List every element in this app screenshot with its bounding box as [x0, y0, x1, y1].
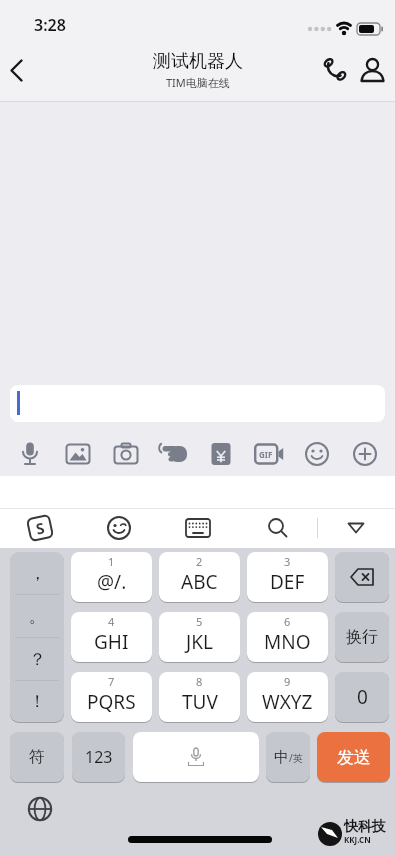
staticText: S	[34, 517, 47, 539]
button[interactable]: 6	[247, 612, 328, 663]
staticText: DEF	[270, 569, 305, 595]
staticText: 。	[29, 606, 46, 627]
staticText: /英	[289, 751, 303, 765]
staticText: GIF	[259, 449, 273, 460]
staticText: ABC	[181, 569, 218, 595]
staticText: TIM电脑在线	[166, 75, 230, 90]
button[interactable]: 4	[71, 612, 152, 663]
button[interactable]	[316, 52, 352, 88]
staticText: JKL	[186, 629, 213, 655]
button[interactable]	[111, 439, 141, 469]
button[interactable]	[10, 385, 385, 422]
button[interactable]	[335, 552, 389, 603]
button[interactable]	[133, 732, 259, 783]
button[interactable]	[101, 512, 137, 544]
button[interactable]: 中	[266, 732, 310, 783]
staticText: 符	[29, 747, 45, 767]
staticText: @/.	[97, 569, 127, 595]
staticText: 8	[196, 674, 203, 689]
staticText: 2	[196, 554, 203, 569]
button[interactable]: 3	[247, 552, 328, 603]
staticText: 中	[274, 748, 289, 767]
button[interactable]: 7	[71, 672, 152, 723]
staticText: ？	[29, 649, 46, 670]
staticText: 5	[196, 614, 203, 629]
button[interactable]	[302, 439, 332, 469]
button[interactable]: 123	[72, 732, 125, 783]
button[interactable]	[260, 512, 296, 544]
staticText: ，	[29, 563, 46, 584]
staticText: 快科技	[344, 818, 386, 836]
staticText: 发送	[337, 747, 371, 768]
button[interactable]: 0	[335, 672, 389, 723]
staticText: 9	[284, 674, 291, 689]
button[interactable]	[180, 512, 216, 544]
button[interactable]	[15, 439, 45, 469]
staticText: KKJ.CN	[344, 834, 371, 845]
staticText: 3	[284, 554, 291, 569]
button[interactable]: ，	[10, 552, 64, 723]
staticText: 1	[108, 554, 115, 569]
staticText: 6	[284, 614, 291, 629]
button[interactable]: 1	[71, 552, 152, 603]
staticText: 0	[357, 684, 368, 710]
button[interactable]	[350, 439, 380, 469]
button[interactable]	[206, 439, 236, 469]
button[interactable]: S	[22, 512, 58, 544]
staticText: 4	[108, 614, 115, 629]
staticText: 换行	[346, 627, 378, 647]
button[interactable]	[354, 52, 390, 88]
staticText: WXYZ	[262, 689, 313, 715]
button[interactable]: 5	[159, 612, 240, 663]
button[interactable]: 2	[159, 552, 240, 603]
staticText: 3:28	[34, 14, 66, 36]
staticText: TUV	[182, 689, 218, 715]
button[interactable]: 9	[247, 672, 328, 723]
staticText: MNO	[264, 629, 311, 655]
staticText: 测试机器人	[153, 50, 243, 73]
button[interactable]: 换行	[335, 612, 389, 663]
button[interactable]	[159, 439, 189, 469]
button[interactable]	[338, 512, 374, 544]
staticText: 123	[85, 746, 113, 768]
staticText: ！	[29, 691, 46, 712]
button[interactable]: 8	[159, 672, 240, 723]
staticText: PQRS	[87, 689, 136, 715]
button[interactable]	[24, 793, 56, 825]
staticText: GHI	[94, 629, 129, 655]
button[interactable]: 符	[10, 732, 64, 783]
button[interactable]	[63, 439, 93, 469]
staticText: 7	[108, 674, 115, 689]
button[interactable]: 发送	[317, 732, 390, 783]
button[interactable]: GIF	[254, 439, 284, 469]
button[interactable]	[0, 52, 34, 88]
